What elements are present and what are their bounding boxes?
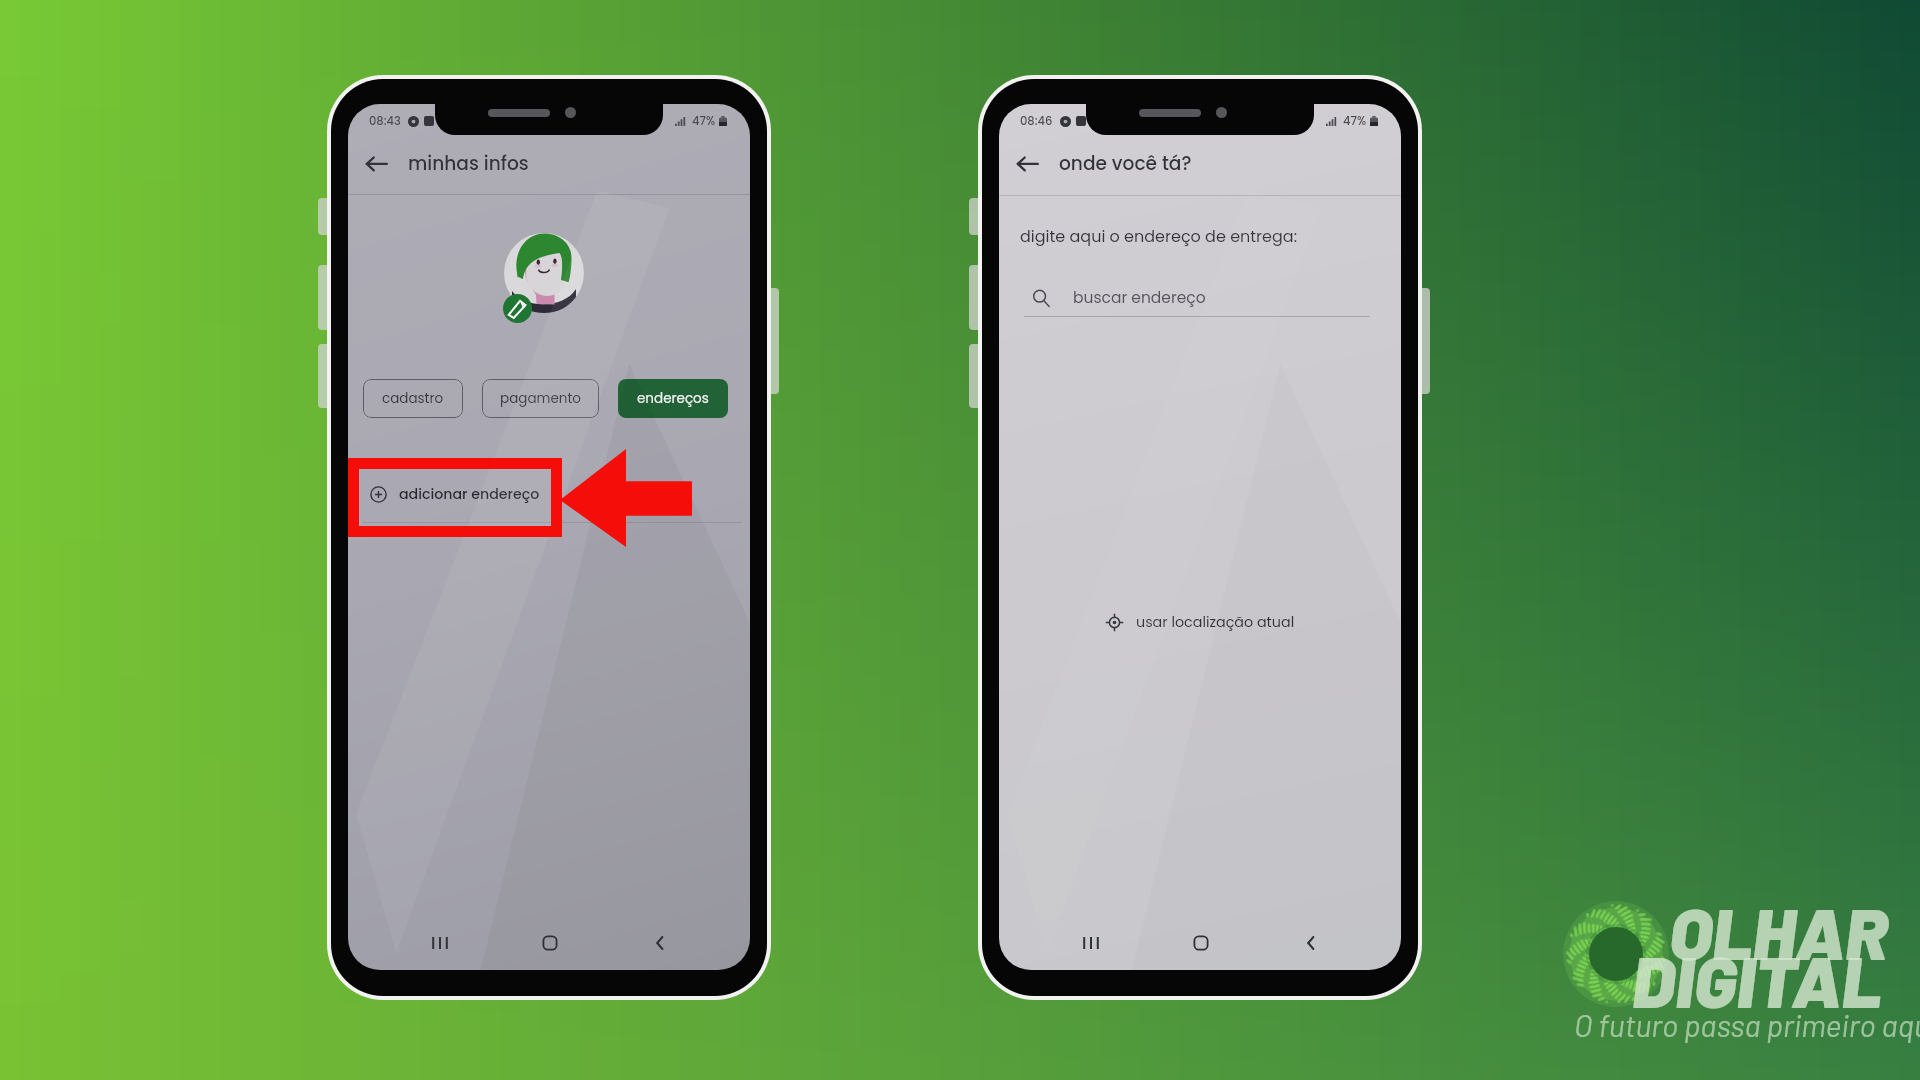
- staticText: cadastro: [382, 389, 444, 408]
- button[interactable]: Recentes: [1069, 923, 1113, 963]
- staticText: endereços: [637, 389, 709, 408]
- button[interactable]: Início: [1179, 923, 1223, 963]
- staticText: 47%: [692, 113, 716, 129]
- staticText: DIGITAL: [1632, 936, 1882, 1022]
- button[interactable]: Voltar: [1289, 923, 1333, 963]
- staticText: usar localização atual: [1136, 612, 1295, 632]
- staticText: O futuro passa primeiro aqui: [1574, 1006, 1920, 1043]
- button[interactable]: endereços: [618, 379, 728, 418]
- staticText: pagamento: [500, 389, 581, 408]
- staticText: digite aqui o endereço de entrega:: [1020, 225, 1298, 247]
- button[interactable]: usar localização atual: [999, 610, 1401, 634]
- other: Voltar: [362, 149, 390, 177]
- staticText: 08:46: [1020, 113, 1053, 129]
- button[interactable]: Voltar: [362, 146, 529, 180]
- button[interactable]: Voltar: [638, 923, 682, 963]
- button[interactable]: Editar foto: [503, 294, 532, 323]
- button[interactable]: cadastro: [363, 379, 463, 418]
- staticText: 47%: [1343, 113, 1367, 129]
- other: Voltar: [1013, 149, 1041, 177]
- button[interactable]: pagamento: [482, 379, 599, 418]
- button[interactable]: buscar endereço: [1032, 285, 1384, 311]
- button[interactable]: adicionar endereço: [370, 478, 540, 510]
- button[interactable]: Voltar: [1013, 146, 1192, 180]
- staticText: 08:43: [369, 113, 401, 129]
- button[interactable]: Recentes: [418, 923, 462, 963]
- button[interactable]: Início: [528, 923, 572, 963]
- staticText: OLHAR: [1669, 888, 1889, 974]
- staticText: buscar endereço: [1073, 287, 1206, 309]
- staticText: onde você tá?: [1059, 150, 1192, 176]
- staticText: adicionar endereço: [399, 484, 540, 504]
- staticText: minhas infos: [408, 150, 529, 176]
